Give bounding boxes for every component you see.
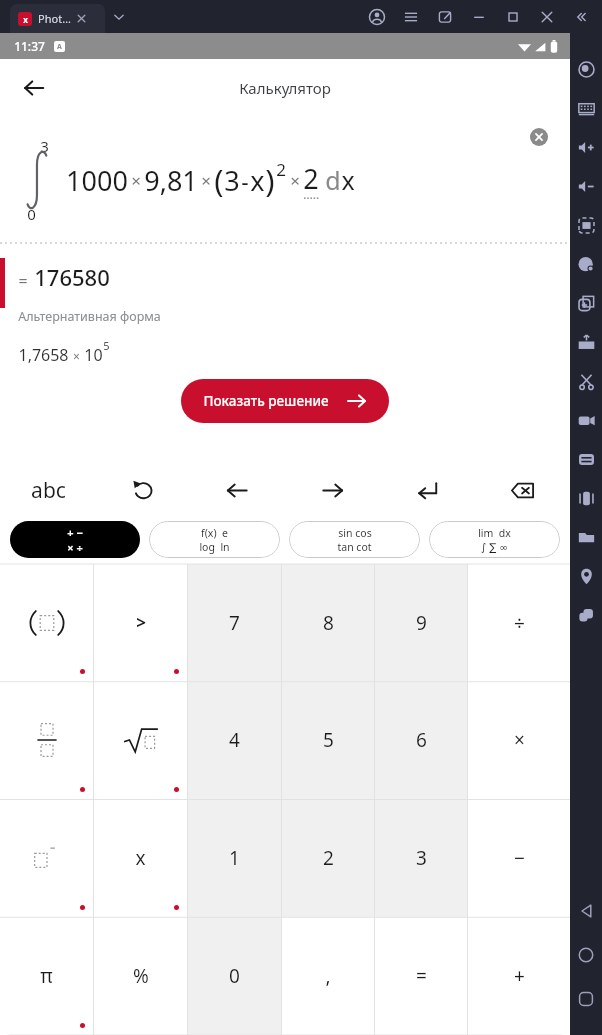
staticText: 10 [84,344,103,366]
staticText: 1 [229,845,240,871]
button[interactable]: 2 [282,799,374,917]
button[interactable]: abc [0,461,96,519]
staticText: 1,7658 [18,344,69,366]
staticText: × [73,348,80,364]
button[interactable]: Rotate [570,209,602,241]
button[interactable]: Square [0,799,93,917]
button[interactable]: Maximize [496,0,530,33]
button[interactable]: Menu [394,0,428,33]
button[interactable]: Back [570,889,602,933]
staticText: Альтернативная форма [18,308,161,325]
staticText: = [416,963,427,989]
button[interactable]: 0 [188,917,281,1035]
button[interactable]: x [10,4,105,33]
button[interactable]: × [468,681,570,799]
staticText: > [136,611,146,634]
staticText: 3 [416,845,427,871]
button[interactable]: 8 [282,564,374,681]
button[interactable]: Files [570,521,602,553]
button[interactable]: Detach [428,0,462,33]
staticText: - [241,165,249,196]
button[interactable]: lim dx [429,521,560,558]
button[interactable]: Volume down [570,170,602,202]
staticText: abc [31,476,66,505]
button[interactable]: Resize [570,443,602,475]
staticText: ÷ [514,610,525,636]
button[interactable]: Fold [570,482,602,514]
button[interactable]: + − [10,521,140,558]
button[interactable]: Gt [94,564,187,681]
staticText: = [18,270,28,292]
button[interactable]: Record screen [570,404,602,436]
button[interactable]: − [468,799,570,917]
button[interactable]: Recents [570,977,602,1021]
button[interactable]: Clear [526,124,552,150]
button[interactable]: , [282,917,374,1035]
button[interactable]: = [375,917,467,1035]
button[interactable]: More tabs [108,6,130,28]
staticText: , [325,963,331,989]
staticText: 2 [323,845,334,871]
button[interactable]: Extended controls [570,53,602,85]
button[interactable]: Paren [0,564,93,681]
button[interactable]: Показать решение [181,379,389,423]
button[interactable]: 4 [188,681,281,799]
staticText: 1000 [66,162,128,199]
staticText: ( [214,159,224,201]
button[interactable]: Pi [0,917,93,1035]
button[interactable]: Frac [0,681,93,799]
staticText: 5 [103,338,110,353]
button[interactable]: sin cos [289,521,420,558]
staticText: ) [265,159,275,201]
staticText: × [201,169,211,192]
button[interactable]: 7 [188,564,281,681]
button[interactable]: Enter [380,461,475,519]
button[interactable]: Backspace [475,461,570,519]
staticText: 0 [229,963,240,989]
button[interactable]: 6 [375,681,467,799]
button[interactable]: 3 [375,799,467,917]
button[interactable]: Install APK [570,326,602,358]
staticText: 7 [229,610,240,636]
staticText: x [250,162,265,199]
button[interactable]: Pct [94,917,187,1035]
staticText: x [135,845,146,871]
button[interactable]: Move left [190,461,285,519]
button[interactable]: Screenshot [570,287,602,319]
button[interactable]: Location [570,560,602,592]
button[interactable]: 9 [375,564,467,681]
button[interactable]: Back [10,64,58,112]
staticText: log ln [199,540,230,554]
button[interactable]: Home [570,933,602,977]
button[interactable]: History [96,461,190,519]
staticText: x [341,163,355,197]
button[interactable]: Move right [285,461,380,519]
staticText: sin cos [338,526,372,540]
button[interactable]: Sqrt [94,681,187,799]
button[interactable]: XVar [94,799,187,917]
staticText: 11:37 [14,38,45,54]
button[interactable]: Volume up [570,131,602,163]
button[interactable]: Collapse [564,0,598,33]
staticText: 6 [416,727,427,753]
button[interactable]: Minimize [462,0,496,33]
button[interactable]: 1 [188,799,281,917]
button[interactable]: Close [530,0,564,33]
button[interactable]: Keyboard [570,92,602,124]
staticText: × [290,169,300,192]
button[interactable]: ÷ [468,564,570,681]
button[interactable]: Snip [570,365,602,397]
staticText: 9 [416,610,427,636]
button[interactable]: 5 [282,681,374,799]
button[interactable]: Multi window [570,599,602,631]
staticText: + [514,963,525,989]
staticText: 0 [27,204,36,224]
button[interactable]: Power [570,248,602,280]
button[interactable]: Account [360,0,394,33]
button[interactable]: + [468,917,570,1035]
staticText: x [23,14,28,25]
staticText: 176580 [34,262,110,292]
staticText: % [133,963,149,989]
staticText: f(x) e [201,526,228,540]
button[interactable]: f(x) e [149,521,280,558]
